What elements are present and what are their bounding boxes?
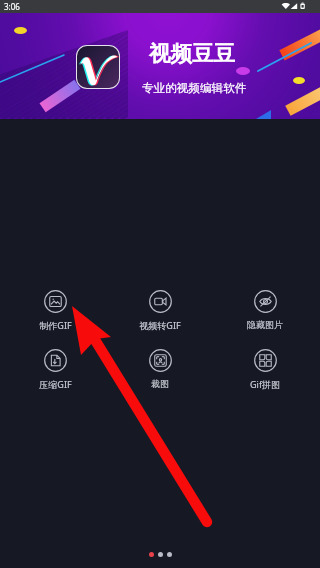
button[interactable]: 裁图 bbox=[116, 348, 204, 390]
button[interactable]: 制作GIF bbox=[11, 289, 99, 332]
staticText: 制作GIF bbox=[39, 319, 72, 331]
staticText: 3:06 bbox=[4, 1, 20, 12]
staticText: 裁图 bbox=[151, 378, 169, 389]
staticText: 隐藏图片 bbox=[247, 319, 283, 330]
staticText: 视频豆豆 bbox=[149, 40, 235, 67]
button[interactable]: 视频转GIF bbox=[116, 289, 204, 332]
staticText: 视频转GIF bbox=[139, 319, 181, 331]
button[interactable]: Gif拼图 bbox=[221, 348, 309, 391]
button[interactable]: 压缩GIF bbox=[11, 348, 99, 391]
staticText: Gif拼图 bbox=[250, 378, 280, 390]
button[interactable]: 隐藏图片 bbox=[221, 289, 309, 331]
staticText: 专业的视频编辑软件 bbox=[142, 81, 247, 96]
staticText: 压缩GIF bbox=[39, 378, 72, 390]
